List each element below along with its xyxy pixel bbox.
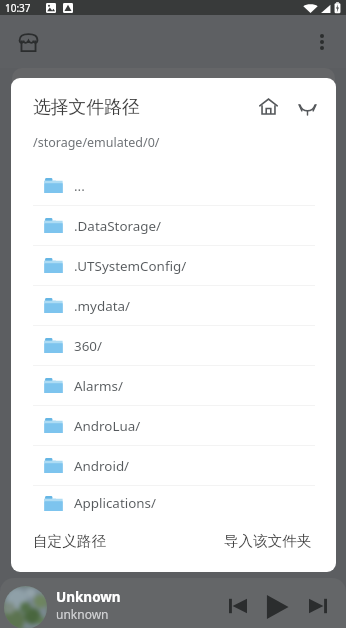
button[interactable]: ...	[11, 166, 336, 205]
button[interactable]: Applications/	[11, 486, 336, 520]
button[interactable]: AndroLua/	[11, 406, 336, 445]
button[interactable]: 导入该文件夹	[214, 518, 322, 564]
button[interactable]: 自定义路径	[23, 518, 116, 564]
staticText: Applications/	[74, 494, 156, 512]
staticText: .UTSystemConfig/	[74, 257, 187, 275]
staticText: Android/	[74, 457, 130, 475]
button[interactable]: Previous	[221, 589, 255, 623]
staticText: 360/	[74, 337, 102, 355]
staticText: AndroLua/	[74, 417, 141, 435]
button[interactable]: More options	[302, 22, 342, 62]
staticText: 选择文件路径	[33, 96, 140, 118]
staticText: /storage/emulated/0/	[33, 134, 160, 151]
staticText: Unknown	[56, 588, 121, 606]
staticText: .DataStorage/	[74, 217, 162, 235]
staticText: unknown	[56, 606, 109, 622]
button[interactable]: .mydata/	[11, 286, 336, 325]
button[interactable]: .DataStorage/	[11, 206, 336, 245]
button[interactable]: Android/	[11, 446, 336, 485]
button[interactable]: Alarms/	[11, 366, 336, 405]
button[interactable]: .UTSystemConfig/	[11, 246, 336, 285]
button[interactable]: Home	[249, 87, 287, 125]
button[interactable]: Play	[260, 589, 295, 624]
button[interactable]: Store	[8, 22, 48, 62]
staticText: 10:37	[5, 1, 31, 15]
staticText: .mydata/	[74, 297, 131, 315]
staticText: ...	[74, 177, 85, 195]
button[interactable]: Toggle hidden files	[288, 89, 326, 127]
button[interactable]: 360/	[11, 326, 336, 365]
staticText: 导入该文件夹	[224, 532, 312, 550]
button[interactable]: Next	[301, 589, 335, 623]
staticText: 自定义路径	[33, 532, 106, 550]
staticText: Alarms/	[74, 377, 123, 395]
